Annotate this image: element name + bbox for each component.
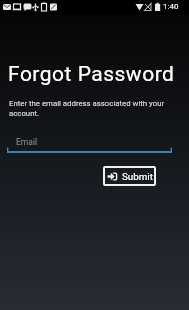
staticText: Forgot Password <box>8 62 175 87</box>
staticText: 1:40 <box>163 2 179 11</box>
button[interactable]: Email <box>7 130 172 153</box>
staticText: Email <box>16 137 38 147</box>
button[interactable]: Submit <box>103 166 156 186</box>
staticText: Enter the email address associated with … <box>9 99 165 118</box>
staticText: Submit <box>122 171 153 182</box>
